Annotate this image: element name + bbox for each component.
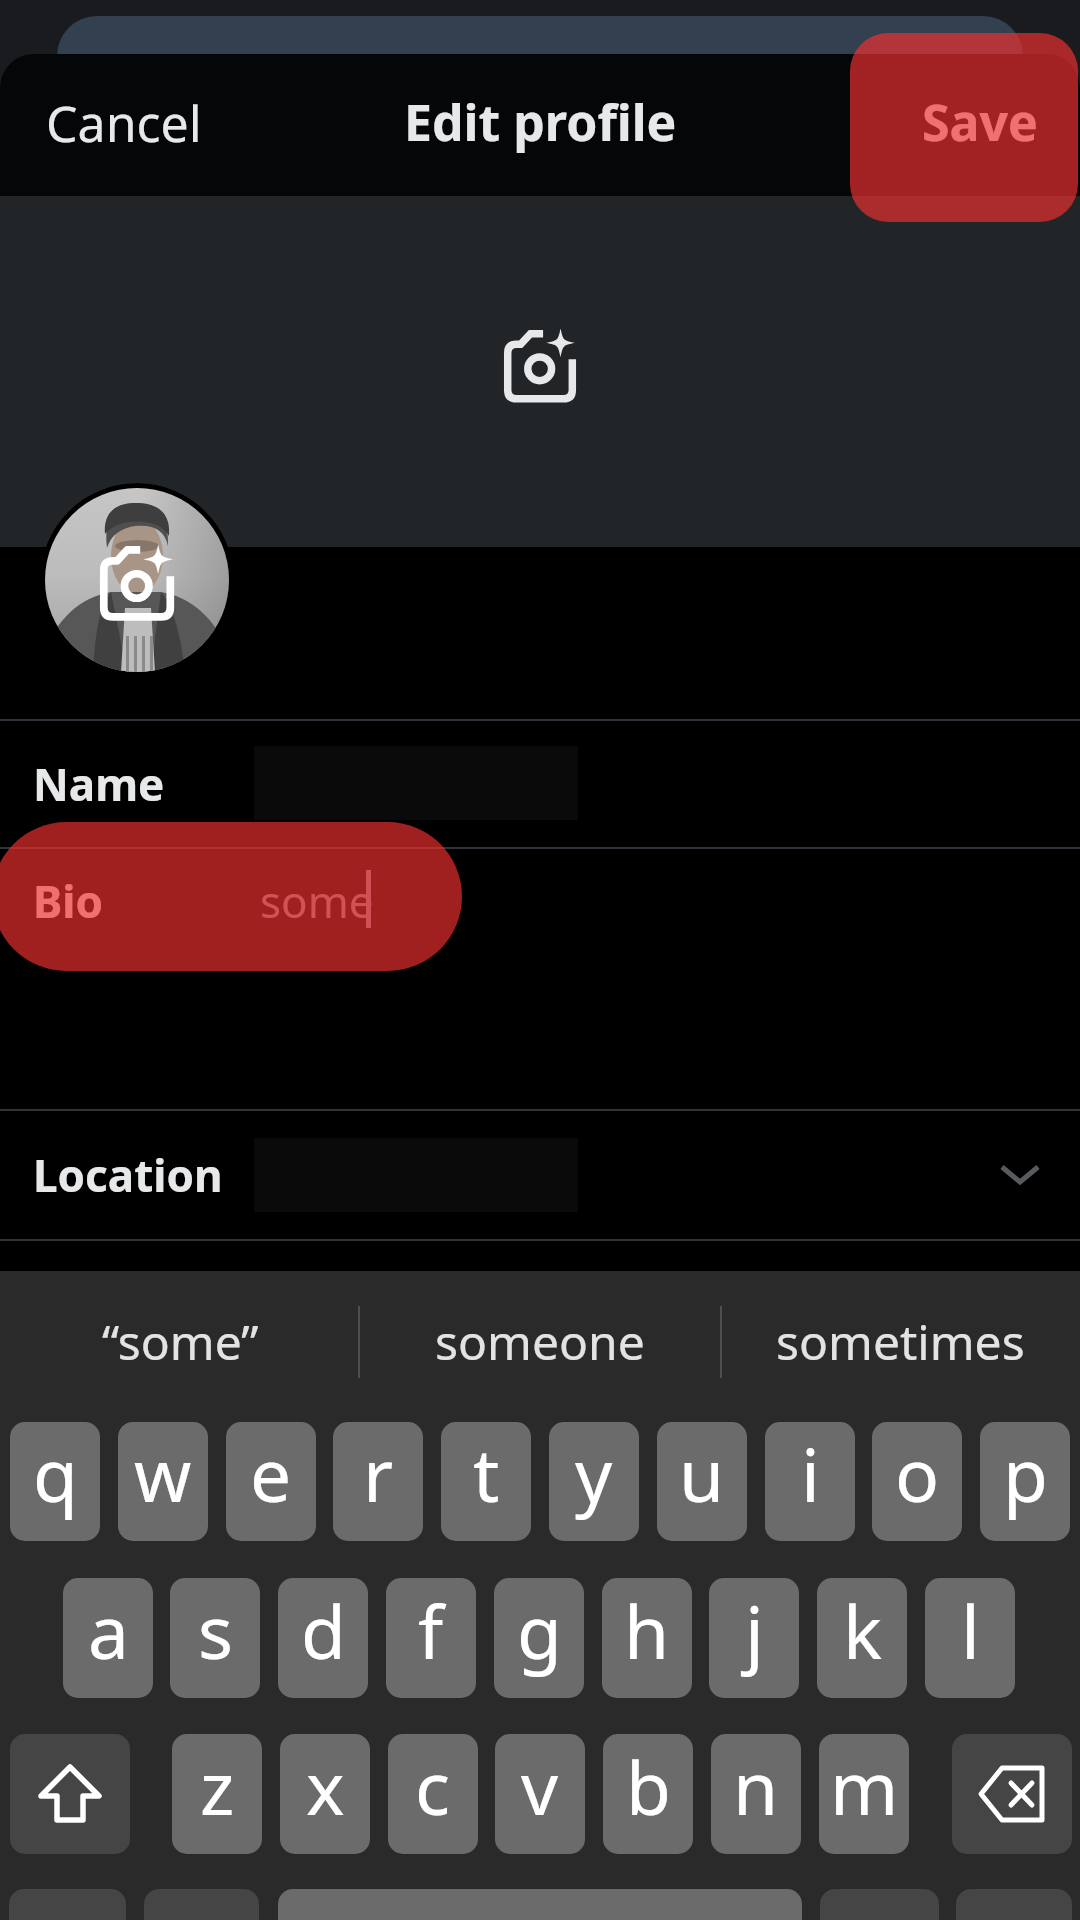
button[interactable]: k: [817, 1578, 907, 1698]
button[interactable]: a: [63, 1578, 153, 1698]
button[interactable]: x: [280, 1734, 370, 1854]
button[interactable]: j: [709, 1578, 799, 1698]
staticText: k: [843, 1581, 882, 1680]
staticText: i: [801, 1424, 820, 1523]
staticText: sometimes: [776, 1309, 1025, 1374]
staticText: s: [198, 1581, 233, 1680]
staticText: y: [575, 1424, 613, 1523]
staticText: Edit profile: [404, 88, 677, 156]
staticText: r: [363, 1424, 394, 1523]
button[interactable]: Enter: [956, 1889, 1072, 1920]
button[interactable]: u: [657, 1422, 747, 1541]
button[interactable]: y: [549, 1422, 639, 1541]
button[interactable]: m: [819, 1734, 909, 1854]
button[interactable]: r: [333, 1422, 423, 1541]
staticText: some: [260, 871, 374, 931]
button[interactable]: s: [170, 1578, 260, 1698]
staticText: h: [624, 1581, 670, 1680]
staticText: Name: [33, 754, 165, 814]
staticText: o: [895, 1424, 940, 1523]
button[interactable]: b: [603, 1734, 693, 1854]
staticText: g: [517, 1581, 562, 1680]
button[interactable]: Cancel: [22, 76, 226, 170]
button[interactable]: w: [118, 1422, 208, 1541]
button[interactable]: f: [386, 1578, 476, 1698]
staticText: j: [745, 1581, 764, 1680]
staticText: z: [200, 1737, 235, 1836]
staticText: c: [415, 1737, 451, 1836]
button[interactable]: sometimes: [722, 1279, 1078, 1403]
button[interactable]: “some”: [2, 1279, 358, 1403]
button[interactable]: Save: [898, 75, 1062, 169]
staticText: p: [1003, 1424, 1048, 1523]
button[interactable]: o: [872, 1422, 962, 1541]
staticText: Bio: [33, 871, 103, 931]
button[interactable]: p: [980, 1422, 1070, 1541]
staticText: e: [250, 1424, 292, 1523]
staticText: l: [961, 1581, 980, 1680]
button[interactable]: t: [441, 1422, 531, 1541]
staticText: m: [830, 1737, 899, 1836]
button[interactable]: Name: [0, 721, 1080, 847]
button[interactable]: g: [494, 1578, 584, 1698]
button[interactable]: Bio: [0, 849, 1080, 1109]
staticText: b: [626, 1737, 671, 1836]
button[interactable]: Backspace: [952, 1734, 1072, 1854]
staticText: v: [521, 1737, 559, 1836]
staticText: someone: [435, 1309, 645, 1374]
staticText: a: [88, 1581, 129, 1680]
button[interactable]: q: [10, 1422, 100, 1541]
button[interactable]: Change header photo: [505, 328, 573, 396]
button[interactable]: i: [765, 1422, 855, 1541]
staticText: f: [418, 1581, 444, 1680]
button[interactable]: h: [602, 1578, 692, 1698]
button[interactable]: z: [172, 1734, 262, 1854]
button[interactable]: Location: [0, 1111, 1080, 1239]
button[interactable]: l: [925, 1578, 1015, 1698]
staticText: Save: [922, 88, 1038, 156]
staticText: u: [679, 1424, 725, 1523]
button[interactable]: Shift: [10, 1734, 130, 1854]
staticText: n: [733, 1737, 779, 1836]
button[interactable]: Symbols: [9, 1889, 126, 1920]
staticText: Cancel: [46, 89, 202, 157]
button[interactable]: Period: [820, 1889, 939, 1920]
button[interactable]: c: [388, 1734, 478, 1854]
button[interactable]: Emoji: [144, 1889, 259, 1920]
button[interactable]: e: [226, 1422, 316, 1541]
staticText: “some”: [102, 1309, 259, 1374]
button[interactable]: Change profile photo: [40, 483, 234, 677]
button[interactable]: d: [278, 1578, 368, 1698]
button[interactable]: n: [711, 1734, 801, 1854]
staticText: w: [134, 1424, 192, 1523]
staticText: d: [301, 1581, 346, 1680]
staticText: t: [473, 1424, 500, 1523]
staticText: x: [306, 1737, 345, 1836]
button[interactable]: someone: [362, 1279, 718, 1403]
button[interactable]: v: [495, 1734, 585, 1854]
staticText: Location: [33, 1145, 223, 1205]
button[interactable]: [278, 1889, 802, 1920]
staticText: q: [33, 1424, 78, 1523]
